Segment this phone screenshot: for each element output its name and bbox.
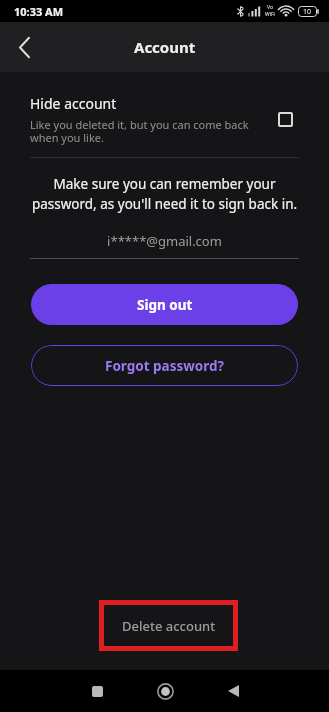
button[interactable]: Forgot password? bbox=[31, 345, 298, 386]
button[interactable] bbox=[278, 112, 293, 127]
staticText: Account bbox=[134, 37, 196, 57]
button[interactable] bbox=[12, 35, 36, 59]
staticText: Sign out bbox=[137, 296, 193, 314]
staticText: Forgot password? bbox=[105, 357, 224, 375]
button[interactable]: Sign out bbox=[31, 284, 298, 325]
staticText: Hide account bbox=[30, 94, 117, 113]
button[interactable]: Delete account bbox=[99, 600, 238, 651]
staticText: Like you deleted it, but you can come ba… bbox=[30, 117, 249, 145]
staticText: Delete account bbox=[122, 617, 216, 635]
button[interactable] bbox=[76, 670, 118, 712]
button[interactable] bbox=[212, 670, 254, 712]
staticText: WiFi bbox=[265, 11, 275, 18]
staticText: 10 bbox=[303, 7, 312, 17]
staticText: 10:33 AM bbox=[14, 4, 64, 19]
staticText: Vo bbox=[267, 4, 273, 11]
button[interactable]: Hide account bbox=[30, 94, 299, 145]
staticText: Make sure you can remember your password… bbox=[0, 175, 329, 213]
button[interactable] bbox=[144, 670, 186, 712]
staticText: i*****@gmail.com bbox=[0, 232, 329, 250]
